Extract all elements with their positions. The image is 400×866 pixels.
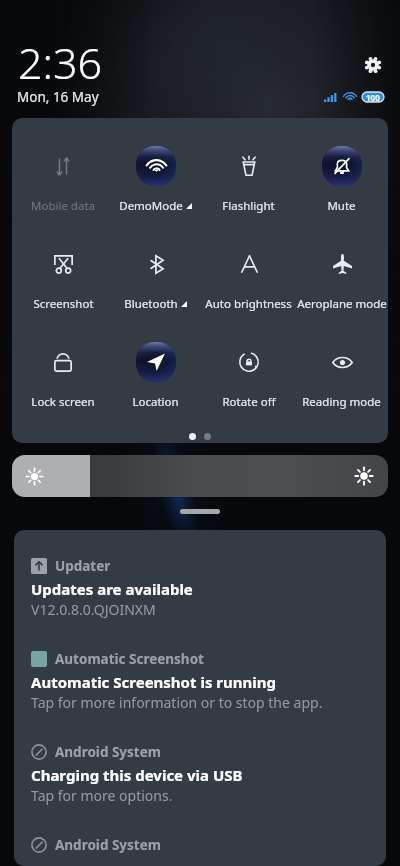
button[interactable]: Screenshot — [17, 244, 109, 342]
staticText: Mon, 16 May — [17, 88, 99, 106]
staticText: Location — [132, 394, 179, 410]
button[interactable]: Bluetooth — [109, 244, 202, 342]
staticText: Rotate off — [222, 394, 276, 410]
staticText: Android System — [55, 836, 161, 854]
staticText: Mute — [327, 198, 356, 214]
staticText: Reading mode — [302, 394, 381, 410]
staticText: Lock screen — [31, 394, 95, 410]
staticText: V12.0.8.0.QJOINXM — [31, 600, 156, 619]
staticText: Tap for more options. — [31, 786, 173, 805]
staticText: DemoMode — [119, 198, 183, 214]
button[interactable]: Mobile data — [17, 146, 109, 244]
button[interactable]: Location — [109, 342, 202, 440]
staticText: Mobile data — [31, 198, 95, 214]
button[interactable]: Settings — [355, 47, 390, 82]
staticText: Aeroplane mode — [297, 296, 387, 312]
staticText: Updater — [55, 557, 111, 575]
staticText: Flashlight — [222, 198, 275, 214]
staticText: 2:36 — [18, 33, 103, 92]
staticText: Tap for more information or to stop the … — [31, 693, 323, 712]
staticText: Automatic Screenshot is running — [31, 672, 276, 692]
staticText: Screenshot — [33, 296, 94, 312]
staticText: Android System — [55, 743, 161, 761]
staticText: Charging this device via USB — [31, 765, 243, 785]
button[interactable]: Brightness — [12, 455, 388, 497]
staticText: Automatic Screenshot — [55, 650, 204, 668]
staticText: 100 — [366, 92, 380, 102]
staticText: Updates are available — [31, 579, 193, 599]
staticText: Bluetooth — [124, 296, 178, 312]
button[interactable]: DemoMode — [109, 146, 202, 244]
button[interactable]: Flashlight — [202, 146, 295, 244]
button[interactable]: Automatic Screenshot — [14, 623, 386, 716]
button[interactable]: Aeroplane mode — [295, 244, 388, 342]
button[interactable]: Android System — [14, 716, 386, 809]
button[interactable]: Updater — [14, 530, 386, 623]
button[interactable]: Auto brightness — [202, 244, 295, 342]
button[interactable]: Lock screen — [17, 342, 109, 440]
button[interactable]: Android System — [14, 809, 386, 866]
staticText: Auto brightness — [205, 296, 292, 312]
button[interactable]: Mute — [295, 146, 388, 244]
button[interactable]: Reading mode — [295, 342, 388, 440]
button[interactable]: Rotate off — [202, 342, 295, 440]
